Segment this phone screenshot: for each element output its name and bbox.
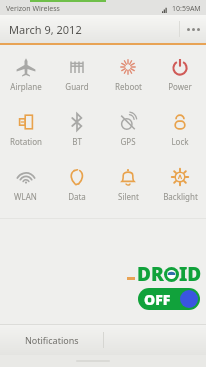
- staticText: Lock: [171, 136, 189, 147]
- staticText: OFF: [144, 290, 171, 309]
- staticText: ID: [179, 261, 202, 287]
- button[interactable]: Data: [51, 165, 102, 204]
- button[interactable]: Rotation: [0, 110, 51, 149]
- button[interactable]: WLAN: [0, 165, 51, 204]
- staticText: BT: [72, 136, 82, 147]
- staticText: Notifications: [25, 334, 79, 346]
- button[interactable]: Reboot: [102, 55, 154, 94]
- button[interactable]: Guard: [51, 55, 102, 94]
- button[interactable]: Backlight: [154, 165, 206, 204]
- staticText: Rotation: [10, 136, 42, 147]
- button[interactable]: BT: [51, 110, 102, 149]
- staticText: 10:59AM: [172, 4, 201, 14]
- staticText: DR: [137, 261, 164, 287]
- staticText: Silent: [118, 191, 139, 202]
- button[interactable]: Lock: [154, 110, 206, 149]
- staticText: WLAN: [14, 191, 37, 202]
- staticText: Reboot: [115, 81, 142, 92]
- button[interactable]: Power: [154, 55, 206, 94]
- button[interactable]: GPS: [102, 110, 154, 149]
- button[interactable]: More options: [180, 15, 206, 43]
- button[interactable]: Notifications: [0, 325, 103, 355]
- button[interactable]: Droid Off: [127, 261, 202, 310]
- staticText: GPS: [120, 136, 136, 147]
- staticText: Airplane: [10, 81, 42, 92]
- staticText: Verizon Wireless: [6, 4, 60, 14]
- staticText: Power: [168, 81, 192, 92]
- staticText: Backlight: [163, 191, 198, 202]
- staticText: Data: [68, 191, 86, 202]
- staticText: Guard: [65, 81, 89, 92]
- staticText: March 9, 2012: [9, 22, 82, 37]
- button[interactable]: Airplane: [0, 55, 51, 94]
- button[interactable]: Silent: [102, 165, 154, 204]
